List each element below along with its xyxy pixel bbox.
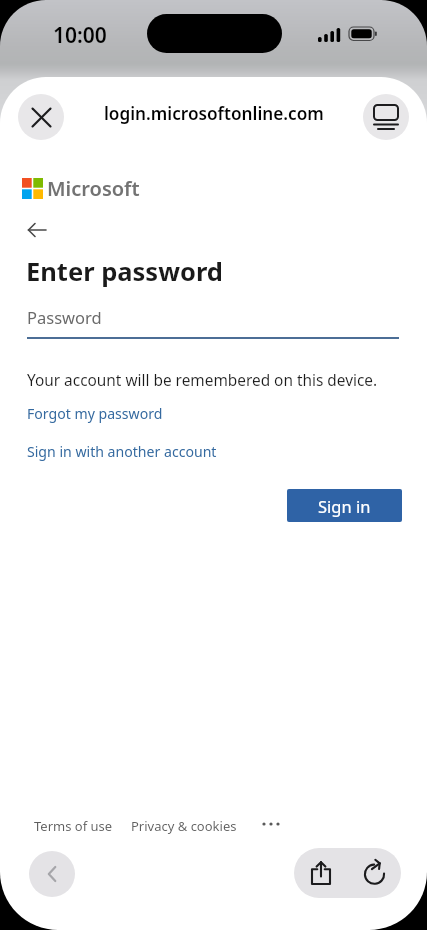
staticText: Enter password — [26, 254, 223, 289]
staticText: Password — [27, 306, 102, 328]
button[interactable] — [294, 848, 347, 898]
staticText: Sign in — [318, 495, 371, 517]
staticText: Microsoft — [47, 175, 140, 202]
staticText: Your account will be remembered on this … — [27, 370, 378, 391]
button[interactable] — [29, 851, 75, 897]
staticText: login.microsoftonline.com — [104, 102, 324, 125]
button[interactable] — [18, 94, 64, 140]
button[interactable] — [363, 94, 409, 140]
button[interactable]: Sign in — [287, 489, 402, 522]
button[interactable] — [20, 213, 54, 247]
staticText: 10:00 — [53, 21, 107, 50]
button[interactable]: Sign in with another account — [27, 442, 217, 461]
button[interactable] — [348, 848, 401, 898]
button[interactable]: Forgot my password — [27, 404, 163, 423]
button[interactable]: Terms of use — [34, 817, 113, 835]
button[interactable]: Privacy & cookies — [131, 817, 237, 835]
